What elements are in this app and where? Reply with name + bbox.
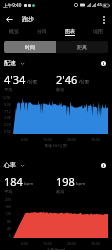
- staticText: 0: [9, 233, 11, 238]
- staticText: 最佳: [56, 87, 65, 92]
- staticText: 160: [5, 204, 11, 209]
- staticText: 图表: [65, 28, 75, 34]
- button[interactable]: Info: [99, 59, 108, 68]
- staticText: 分段: [37, 28, 47, 34]
- staticText: 最高: [56, 189, 65, 194]
- staticText: bpm: [24, 181, 34, 187]
- staticText: 0:00: [21, 241, 28, 246]
- staticText: 心率 (bpm): [47, 247, 66, 250]
- staticText: 平均: [4, 189, 13, 194]
- staticText: /公里: [27, 79, 37, 85]
- staticText: 10:00: [43, 137, 52, 142]
- staticText: 80: [7, 219, 11, 224]
- staticText: 12'00: [2, 95, 11, 100]
- staticText: 20:00: [67, 137, 76, 142]
- staticText: 心率: [4, 161, 16, 169]
- staticText: 120: [5, 211, 11, 216]
- staticText: 4'48: [4, 115, 11, 120]
- staticText: bpm: [76, 181, 86, 187]
- staticText: 地图: [93, 28, 103, 34]
- button[interactable]: Back: [1, 11, 17, 27]
- staticText: 平均: [4, 87, 13, 92]
- button[interactable]: More options: [97, 13, 110, 26]
- staticText: 上午9:40: [3, 2, 22, 8]
- staticText: 30:00: [91, 241, 100, 246]
- button[interactable]: 图表: [56, 28, 84, 38]
- staticText: 配速: [4, 59, 16, 67]
- staticText: 40: [7, 226, 11, 231]
- staticText: 200: [5, 197, 11, 202]
- staticText: 0:00: [21, 137, 28, 142]
- staticText: 10:00: [43, 241, 52, 246]
- button[interactable]: 地图: [84, 28, 112, 38]
- staticText: 9'36: [4, 102, 11, 107]
- staticText: 7'12: [4, 109, 11, 114]
- staticText: 30:00: [91, 137, 100, 142]
- staticText: 配速 (分/公里): [45, 143, 68, 148]
- staticText: 2'24: [4, 122, 11, 127]
- staticText: /公里: [79, 79, 89, 85]
- staticText: 4'34: [4, 72, 26, 87]
- staticText: 2'46: [56, 72, 78, 87]
- button[interactable]: 概览: [0, 28, 28, 38]
- button[interactable]: 分段: [28, 28, 56, 38]
- staticText: 概览: [9, 28, 19, 34]
- staticText: 跑步: [22, 15, 34, 23]
- button[interactable]: 心率: [4, 161, 25, 169]
- button[interactable]: 时间: [4, 41, 56, 53]
- staticText: 198: [56, 174, 75, 189]
- button[interactable]: Info: [99, 161, 108, 170]
- staticText: 20:00: [67, 241, 76, 246]
- staticText: 45: [97, 2, 102, 8]
- staticText: 时间: [25, 44, 35, 50]
- button[interactable]: 配速: [4, 59, 25, 67]
- staticText: 184: [4, 174, 23, 189]
- staticText: 0'00: [4, 129, 11, 134]
- button[interactable]: 距离: [56, 41, 108, 53]
- staticText: 距离: [77, 44, 87, 50]
